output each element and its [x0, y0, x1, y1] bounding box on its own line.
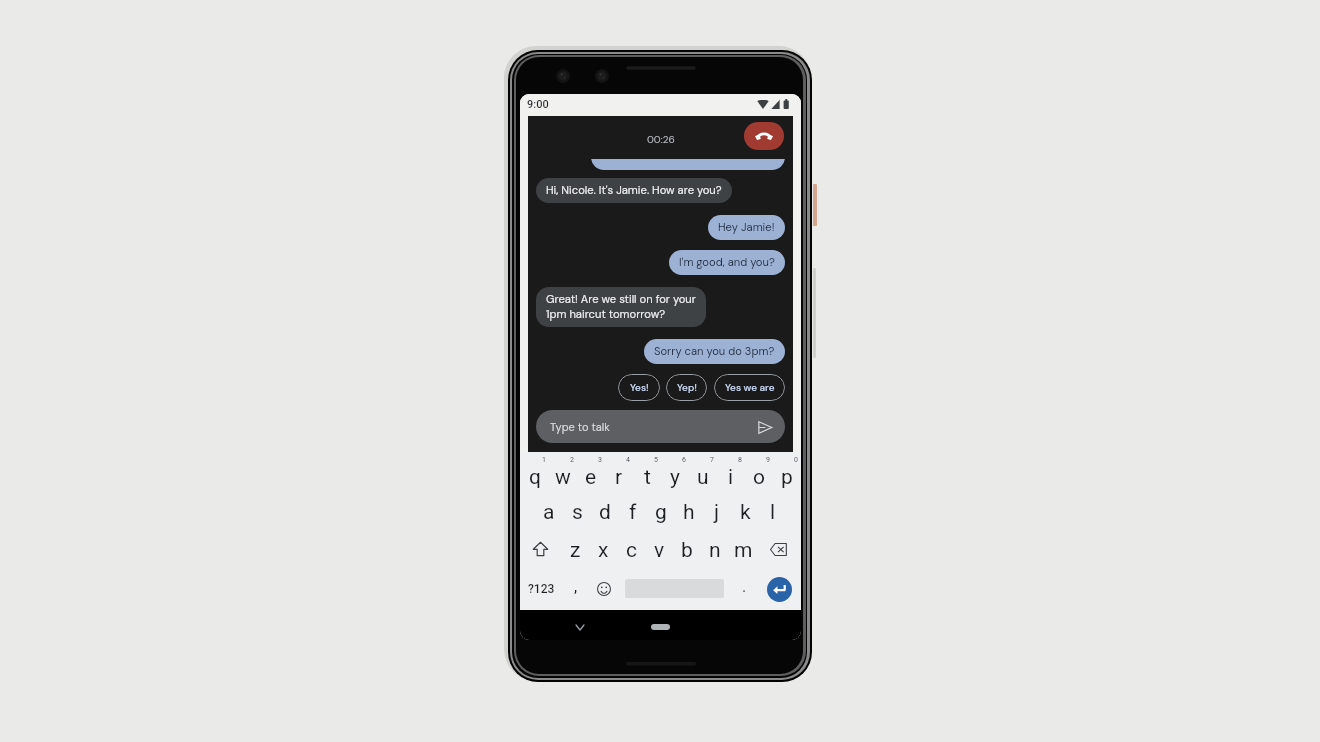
button[interactable]: Backspace — [764, 532, 793, 566]
button[interactable]: End call — [744, 122, 784, 150]
button[interactable]: Yes! — [618, 374, 660, 401]
button[interactable]: l — [759, 494, 787, 528]
staticText: i — [728, 465, 734, 490]
staticText: e — [585, 465, 597, 490]
staticText: ?123 — [528, 582, 555, 596]
staticText: y — [670, 465, 680, 490]
staticText: 4 — [626, 456, 630, 464]
staticText: 9 — [766, 456, 770, 464]
button[interactable]: k — [731, 494, 759, 528]
button[interactable]: Emoji — [593, 571, 614, 607]
button[interactable]: Enter — [767, 577, 792, 602]
staticText: b — [681, 538, 693, 563]
staticText: x — [598, 538, 609, 563]
staticText: l — [770, 500, 776, 525]
button[interactable]: s — [563, 494, 591, 528]
staticText: Great! Are we still on for your 1pm hair… — [546, 292, 696, 322]
staticText: Hi, Nicole. It's Jamie. How are you? — [546, 183, 722, 198]
staticText: z — [570, 538, 581, 563]
button[interactable]: I'm good, and you? — [669, 250, 785, 275]
staticText: 2 — [570, 456, 574, 464]
button[interactable]: Sorry can you do 3pm? — [644, 339, 785, 364]
button[interactable]: ?123 — [525, 571, 557, 607]
staticText: h — [683, 500, 695, 525]
staticText: Yes we are — [725, 381, 775, 394]
button[interactable]: Shift — [526, 532, 555, 566]
button[interactable]: v — [645, 532, 673, 566]
staticText: u — [697, 465, 709, 490]
button[interactable]: z — [561, 532, 589, 566]
staticText: Yes! — [630, 381, 649, 394]
button[interactable]: g — [647, 494, 675, 528]
button[interactable]: Send — [755, 417, 775, 437]
button[interactable]: Type to talk — [536, 410, 785, 443]
staticText: c — [626, 538, 637, 563]
staticText: 1 — [542, 456, 546, 464]
button[interactable]: 1 — [520, 456, 549, 490]
button[interactable]: m — [729, 532, 757, 566]
staticText: Type to talk — [550, 420, 610, 434]
staticText: , — [574, 577, 578, 596]
button[interactable]: Great! Are we still on for your 1pm hair… — [536, 287, 706, 327]
staticText: I'm good, and you? — [679, 255, 775, 270]
staticText: 9:00 — [527, 98, 549, 111]
staticText: q — [529, 465, 541, 490]
staticText: k — [740, 500, 751, 525]
staticText: Hey Jamie! — [718, 220, 775, 235]
button[interactable]: f — [619, 494, 647, 528]
button[interactable]: , — [565, 571, 586, 607]
staticText: m — [734, 538, 753, 563]
staticText: r — [615, 465, 623, 490]
button[interactable]: 7 — [689, 456, 717, 490]
button[interactable]: . — [734, 571, 755, 607]
staticText: f — [629, 500, 637, 525]
staticText: o — [753, 465, 765, 490]
button[interactable]: 5 — [633, 456, 661, 490]
staticText: 0 — [794, 456, 798, 464]
staticText: . — [742, 577, 747, 596]
button[interactable]: Home — [651, 624, 670, 630]
button[interactable]: b — [673, 532, 701, 566]
button[interactable]: h — [675, 494, 703, 528]
staticText: 00:26 — [647, 133, 675, 146]
staticText: t — [644, 465, 651, 490]
staticText: j — [714, 500, 720, 525]
button[interactable]: j — [703, 494, 731, 528]
staticText: d — [599, 500, 611, 525]
staticText: s — [572, 500, 583, 525]
staticText: g — [655, 500, 667, 525]
staticText: p — [781, 465, 793, 490]
staticText: w — [555, 465, 571, 490]
staticText: Sorry can you do 3pm? — [654, 344, 775, 359]
button[interactable]: Hide keyboard — [570, 618, 589, 637]
staticText: n — [709, 538, 721, 563]
button[interactable]: 9 — [745, 456, 773, 490]
staticText: 7 — [710, 456, 714, 464]
button[interactable]: Yep! — [666, 374, 707, 401]
staticText: 3 — [598, 456, 602, 464]
button[interactable]: 6 — [661, 456, 689, 490]
staticText: 5 — [654, 456, 658, 464]
staticText: 8 — [738, 456, 742, 464]
button[interactable]: c — [617, 532, 645, 566]
button[interactable]: 8 — [717, 456, 745, 490]
staticText: a — [543, 500, 555, 525]
button[interactable]: Hi, Nicole. It's Jamie. How are you? — [536, 178, 732, 203]
button[interactable]: Hey Jamie! — [708, 215, 785, 240]
button[interactable]: 0 — [773, 456, 801, 490]
button[interactable]: d — [591, 494, 619, 528]
staticText: 6 — [682, 456, 686, 464]
button[interactable]: 2 — [549, 456, 577, 490]
button[interactable]: Yes we are — [714, 374, 785, 401]
staticText: v — [654, 538, 665, 563]
staticText: Yep! — [677, 381, 697, 394]
button[interactable]: x — [589, 532, 617, 566]
button[interactable]: n — [701, 532, 729, 566]
button[interactable]: a — [534, 494, 563, 528]
button[interactable]: 3 — [577, 456, 605, 490]
button[interactable]: 4 — [605, 456, 633, 490]
